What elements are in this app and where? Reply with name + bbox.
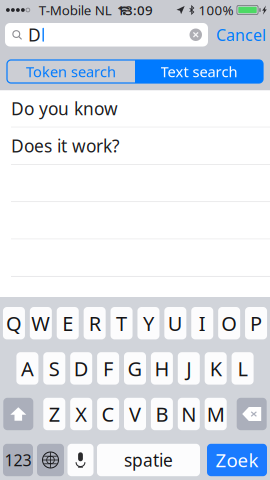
button[interactable]: O: [218, 307, 240, 339]
button[interactable]: I: [191, 307, 213, 339]
button[interactable]: L: [232, 352, 254, 385]
button[interactable]: Token search: [7, 60, 135, 83]
button[interactable]: 123: [3, 444, 33, 476]
button[interactable]: Shift: [3, 398, 33, 430]
staticText: L: [238, 355, 248, 382]
staticText: 123: [4, 449, 31, 471]
button[interactable]: R: [84, 307, 106, 339]
button[interactable]: [0, 165, 270, 202]
staticText: G: [127, 355, 142, 382]
staticText: H: [154, 355, 169, 382]
button[interactable]: D: [70, 352, 92, 385]
staticText: Y: [143, 310, 154, 336]
button[interactable]: N: [178, 398, 200, 430]
button[interactable]: K: [205, 352, 227, 385]
staticText: I: [199, 310, 206, 336]
button[interactable]: Y: [137, 307, 159, 339]
staticText: Zoek: [215, 448, 258, 472]
button[interactable]: Delete: [237, 398, 267, 430]
button[interactable]: Zoek: [207, 444, 267, 476]
button[interactable]: Text search: [135, 60, 263, 83]
button[interactable]: D: [5, 23, 208, 46]
button[interactable]: spatie: [97, 444, 200, 476]
staticText: J: [186, 355, 191, 382]
staticText: Text search: [160, 62, 237, 81]
staticText: A: [21, 355, 34, 382]
staticText: T-Mobile NL: [39, 1, 112, 19]
button[interactable]: Next keyboard: [37, 444, 64, 476]
staticText: spatie: [124, 448, 173, 471]
button[interactable]: B: [151, 398, 173, 430]
staticText: R: [89, 310, 101, 336]
staticText: Do you know: [11, 97, 118, 120]
staticText: N: [181, 401, 196, 427]
button[interactable]: H: [151, 352, 173, 385]
staticText: Z: [49, 401, 60, 427]
button[interactable]: Dictation: [67, 444, 93, 476]
staticText: V: [129, 401, 141, 427]
button[interactable]: W: [30, 307, 52, 339]
staticText: C: [102, 401, 115, 427]
staticText: Does it work?: [11, 134, 120, 157]
button[interactable]: Q: [3, 307, 25, 339]
staticText: X: [75, 401, 87, 427]
staticText: W: [31, 310, 50, 336]
staticText: P: [250, 310, 262, 336]
staticText: D: [74, 355, 89, 382]
staticText: 13:09: [117, 1, 153, 19]
button[interactable]: E: [57, 307, 79, 339]
button[interactable]: M: [205, 398, 227, 430]
button[interactable]: P: [245, 307, 267, 339]
button[interactable]: Does it work?: [0, 127, 270, 165]
staticText: M: [207, 401, 225, 427]
button[interactable]: U: [164, 307, 186, 339]
staticText: Cancel: [216, 24, 266, 45]
button[interactable]: J: [178, 352, 200, 385]
staticText: B: [155, 401, 168, 427]
staticText: 100%: [198, 1, 233, 19]
button[interactable]: Cancel: [216, 23, 266, 46]
button[interactable]: G: [124, 352, 146, 385]
staticText: D: [28, 23, 41, 46]
staticText: Q: [6, 310, 22, 336]
staticText: O: [221, 310, 237, 336]
staticText: K: [210, 355, 222, 382]
button[interactable]: X: [70, 398, 92, 430]
button[interactable]: A: [16, 352, 38, 385]
button[interactable]: [0, 239, 270, 277]
button[interactable]: C: [97, 398, 119, 430]
button[interactable]: F: [97, 352, 119, 385]
button[interactable]: Do you know: [0, 90, 270, 127]
staticText: T: [116, 310, 127, 336]
staticText: U: [168, 310, 183, 336]
staticText: F: [103, 355, 113, 382]
button[interactable]: S: [43, 352, 65, 385]
staticText: S: [49, 355, 60, 382]
staticText: Token search: [26, 62, 116, 81]
button[interactable]: V: [124, 398, 146, 430]
staticText: E: [62, 310, 73, 336]
button[interactable]: Z: [43, 398, 65, 430]
button[interactable]: T: [110, 307, 132, 339]
